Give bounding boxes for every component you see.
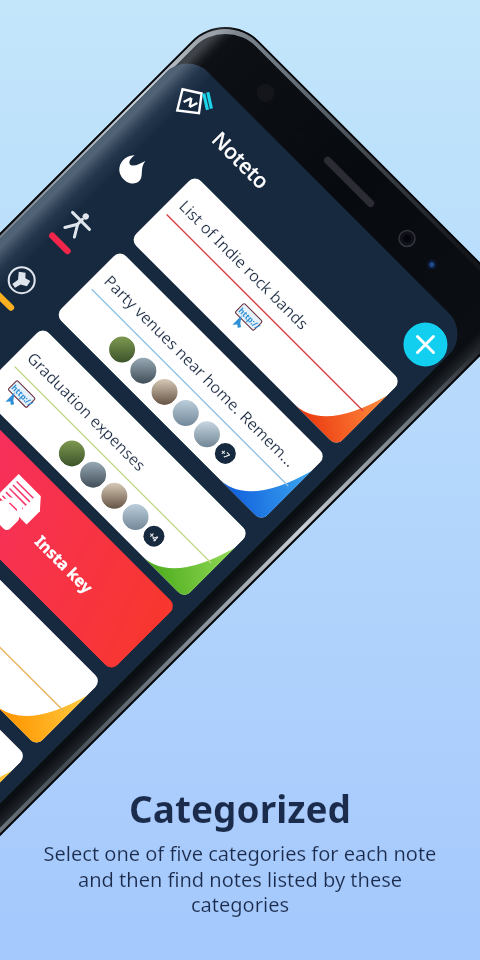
- button[interactable]: Open link: [225, 301, 264, 341]
- button[interactable]: Party venues near home. Remem...: [55, 250, 326, 521]
- button[interactable]: List of Indie rock bands: [130, 175, 401, 446]
- staticText: Categorized: [129, 783, 351, 833]
- button[interactable]: What is the practi...: [0, 475, 102, 746]
- staticText: List of Indie rock bands: [174, 195, 314, 335]
- button[interactable]: Open link: [0, 378, 37, 418]
- staticText: Select one of five categories for each n…: [34, 840, 446, 918]
- button[interactable]: Graduation expenses: [0, 327, 249, 598]
- staticText: Party venues near home. Remem...: [99, 270, 301, 472]
- button[interactable]: Noteto: [205, 125, 276, 196]
- staticText: http://: [237, 305, 264, 332]
- staticText: +4: [147, 529, 162, 544]
- button[interactable]: Insta key: [0, 400, 176, 671]
- staticText: Graduation expenses: [22, 347, 151, 476]
- staticText: http://: [10, 382, 37, 409]
- staticText: Noteto: [205, 125, 276, 196]
- staticText: Insta key: [30, 530, 98, 598]
- button[interactable]: Some other note...: [0, 550, 27, 821]
- button[interactable]: Close: [394, 313, 456, 376]
- staticText: +7: [218, 446, 233, 461]
